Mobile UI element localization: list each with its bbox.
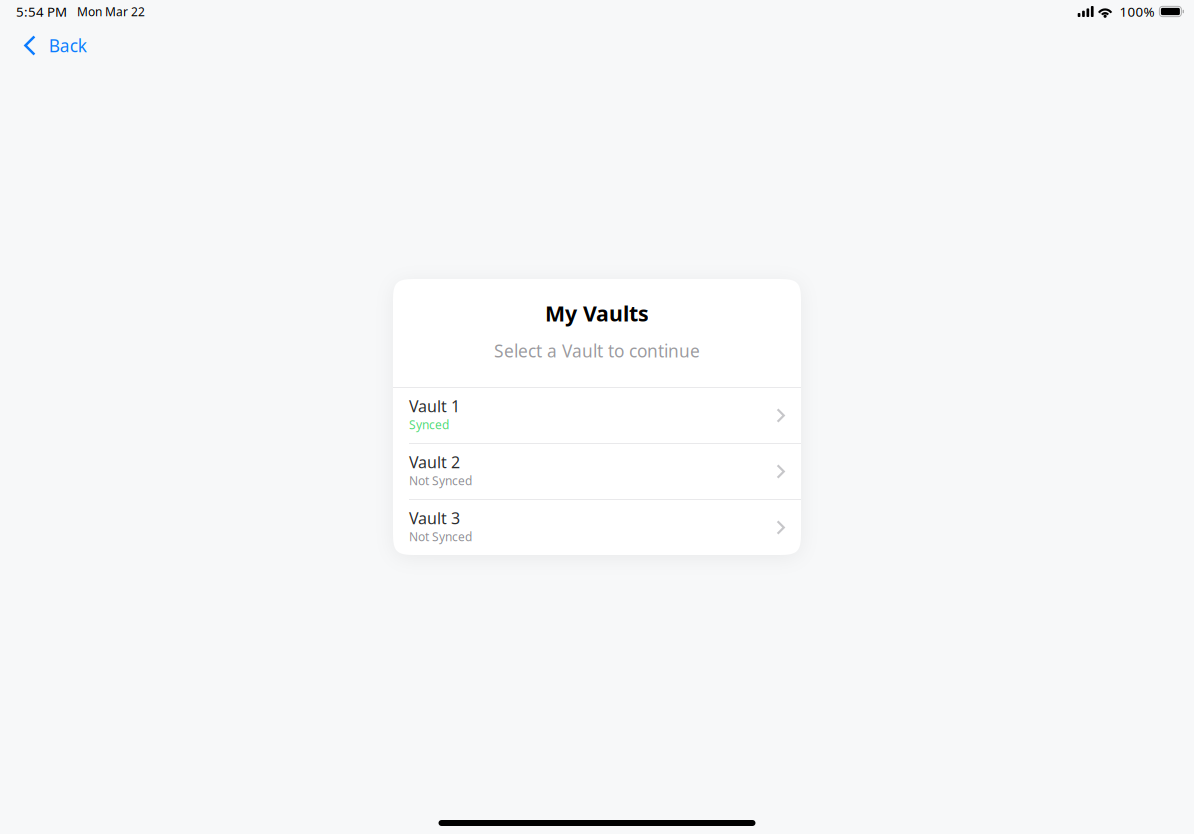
staticText: Vault 3 xyxy=(409,507,460,529)
staticText: My Vaults xyxy=(545,299,649,327)
button[interactable]: Home indicator xyxy=(438,820,755,826)
staticText: Mon Mar 22 xyxy=(77,3,145,19)
staticText: Select a Vault to continue xyxy=(494,339,700,362)
staticText: Synced xyxy=(409,417,449,433)
button[interactable]: Back xyxy=(14,28,97,63)
staticText: Not Synced xyxy=(409,473,472,489)
button[interactable]: Vault 3 xyxy=(393,500,801,555)
staticText: Vault 1 xyxy=(409,395,460,417)
staticText: Back xyxy=(49,34,87,57)
button[interactable]: Vault 1 xyxy=(393,388,801,443)
staticText: Vault 2 xyxy=(409,451,460,473)
button[interactable]: Vault 2 xyxy=(393,444,801,499)
staticText: Not Synced xyxy=(409,529,472,545)
staticText: 5:54 PM xyxy=(16,3,67,20)
staticText: 100% xyxy=(1119,3,1154,20)
